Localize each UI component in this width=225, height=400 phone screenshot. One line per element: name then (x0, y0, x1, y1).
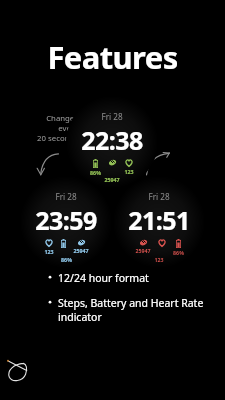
staticText: 123 (154, 256, 164, 263)
staticText: 25947 (135, 247, 151, 254)
staticText: 21:51 (128, 203, 190, 237)
button[interactable]: 86% (90, 159, 101, 176)
button[interactable]: 25947 (73, 239, 89, 254)
button[interactable]: 25947 (135, 239, 151, 254)
button[interactable] (61, 239, 66, 256)
button[interactable]: Watch face 23:59 (20, 176, 112, 268)
button[interactable]: Watch face 22:38 (66, 96, 158, 188)
button[interactable]: 123 (44, 239, 54, 255)
staticText: Fri 28 (101, 111, 123, 122)
staticText: 25947 (104, 176, 120, 183)
staticText: 23:59 (35, 203, 97, 237)
staticText: 22:38 (81, 123, 143, 157)
button[interactable] (158, 239, 166, 255)
staticText: 123 (44, 248, 54, 255)
button[interactable]: Steps, Battery and Heart Rate indicator (42, 296, 207, 324)
staticText: Fri 28 (55, 191, 77, 202)
staticText: Changes every 20 seconds (8, 113, 78, 143)
button[interactable]: 12/24 hour format (42, 271, 207, 286)
button[interactable] (108, 159, 117, 174)
staticText: 123 (124, 168, 134, 175)
staticText: Fri 28 (148, 191, 170, 202)
staticText: 86% (173, 249, 184, 256)
staticText: Features (0, 36, 225, 78)
staticText: 86% (61, 256, 72, 263)
button[interactable]: Brand logo (6, 352, 34, 382)
button[interactable]: 123 (124, 159, 134, 175)
button[interactable]: Watch face 21:51 (113, 176, 205, 268)
staticText: 12/24 hour format (58, 271, 207, 285)
staticText: 25947 (73, 247, 89, 254)
staticText: Steps, Battery and Heart Rate indicator (58, 296, 207, 324)
staticText: 86% (90, 169, 101, 176)
button[interactable]: 86% (173, 239, 184, 256)
